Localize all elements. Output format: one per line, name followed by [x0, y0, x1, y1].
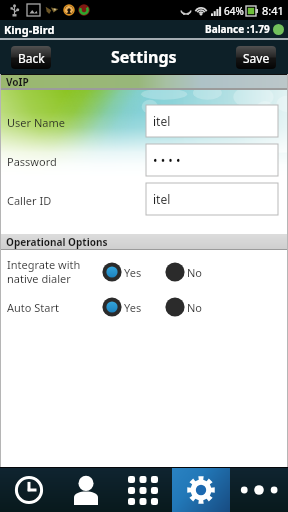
button[interactable]: Yes [102, 262, 142, 282]
button[interactable]: Contacts [57, 468, 114, 512]
staticText: Yes [124, 265, 142, 280]
button[interactable]: No [165, 262, 203, 282]
button[interactable]: itel [146, 105, 278, 137]
staticText: Auto Start [7, 300, 60, 315]
button[interactable]: Yes [102, 297, 142, 317]
staticText: Save [243, 50, 270, 66]
staticText: No [187, 300, 203, 315]
staticText: Integrate with native dialer [7, 257, 81, 286]
staticText: Back [18, 50, 45, 66]
staticText: Operational Options [6, 235, 108, 249]
button[interactable]: Recent [0, 468, 57, 512]
staticText: 64% [224, 4, 244, 18]
button[interactable]: Keypad [114, 468, 172, 512]
button[interactable]: Settings [172, 468, 230, 512]
staticText: King-Bird [4, 22, 55, 37]
staticText: itel [153, 191, 171, 207]
button[interactable]: No [165, 297, 203, 317]
staticText: No [187, 265, 203, 280]
button[interactable]: Save [236, 46, 276, 69]
button[interactable]: More [230, 468, 288, 512]
staticText: • • • • [153, 152, 181, 168]
staticText: VoIP [6, 75, 29, 88]
button[interactable]: • • • • [146, 144, 278, 176]
button[interactable]: itel [146, 183, 278, 215]
button[interactable]: Back [11, 46, 51, 69]
staticText: Balance :1.79 [205, 22, 270, 36]
staticText: itel [153, 113, 171, 129]
staticText: Caller ID [7, 193, 52, 208]
staticText: Yes [124, 300, 142, 315]
staticText: 8:41 [262, 3, 284, 18]
staticText: Settings [111, 46, 177, 68]
staticText: Password [7, 154, 57, 169]
staticText: User Name [7, 115, 65, 130]
